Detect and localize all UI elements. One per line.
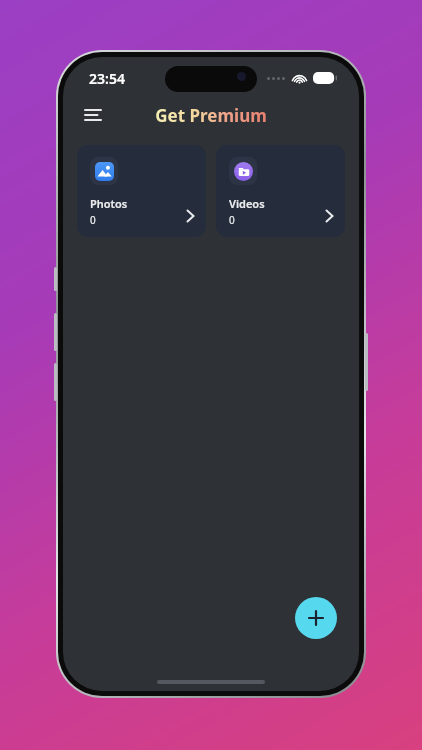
- staticText: 0: [90, 213, 96, 227]
- staticText: Photos: [90, 196, 128, 211]
- button[interactable]: Menu: [75, 97, 111, 133]
- button[interactable]: Photos: [77, 145, 206, 237]
- button[interactable]: Videos: [216, 145, 345, 237]
- button[interactable]: Add: [295, 597, 337, 639]
- staticText: Videos: [229, 196, 265, 211]
- button[interactable]: Get Premium: [155, 104, 267, 127]
- staticText: 23:54: [89, 69, 125, 88]
- staticText: 0: [229, 213, 235, 227]
